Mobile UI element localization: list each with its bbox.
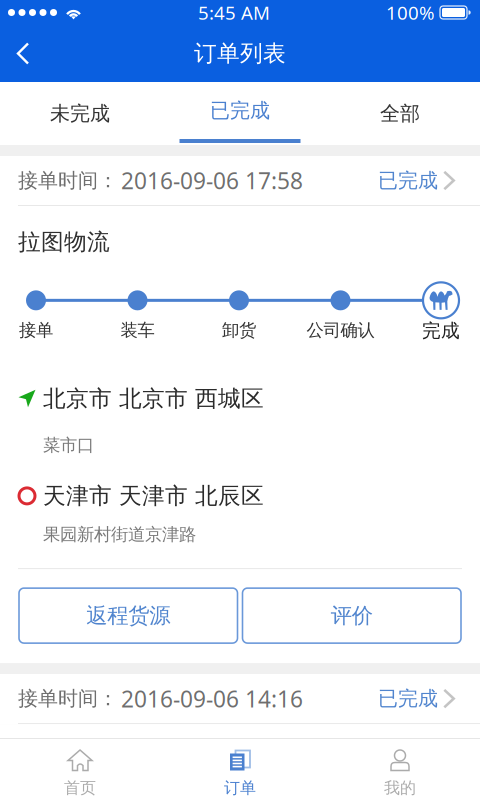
staticText: 全部 xyxy=(380,101,420,126)
staticText: 果园新村街道京津路 xyxy=(43,524,196,545)
staticText: 2016-09-06 17:58 xyxy=(121,165,303,195)
staticText: 天津市 天津市 北辰区 xyxy=(43,482,264,510)
staticText: 2016-09-06 14:16 xyxy=(121,684,303,714)
staticText: 装车 xyxy=(120,320,154,341)
staticText: 接单时间： xyxy=(18,168,118,193)
staticText: 北京市 北京市 西城区 xyxy=(43,385,264,413)
staticText: 完成 xyxy=(422,319,460,342)
staticText: 订单 xyxy=(224,778,256,798)
button[interactable]: 接单时间： xyxy=(0,156,480,205)
staticText: 菜市口 xyxy=(43,435,94,456)
staticText: 拉图物流 xyxy=(18,228,110,256)
staticText: 已完成 xyxy=(210,98,270,123)
staticText: 接单时间： xyxy=(18,686,118,711)
button[interactable]: 全部 xyxy=(320,82,480,145)
staticText: 公司确认 xyxy=(306,320,374,341)
button[interactable]: Back xyxy=(0,26,48,80)
staticText: 已完成 xyxy=(378,168,438,193)
button[interactable]: 评价 xyxy=(242,588,461,643)
button[interactable]: 未完成 xyxy=(0,82,160,145)
button[interactable]: 返程货源 xyxy=(19,588,237,643)
button[interactable]: 接单时间： xyxy=(0,674,480,723)
staticText: 卸货 xyxy=(222,320,256,341)
button[interactable]: 首页 xyxy=(0,739,160,800)
staticText: 返程货源 xyxy=(86,602,170,629)
staticText: 接单 xyxy=(19,320,53,341)
staticText: 我的 xyxy=(384,778,416,798)
staticText: 未完成 xyxy=(50,101,110,126)
staticText: 100% xyxy=(386,0,435,25)
staticText: 已完成 xyxy=(378,686,438,711)
button[interactable]: 已完成 xyxy=(160,82,320,145)
staticText: 订单列表 xyxy=(194,40,286,67)
staticText: 评价 xyxy=(331,602,373,629)
staticText: 首页 xyxy=(64,778,96,798)
button[interactable]: 我的 xyxy=(320,739,480,800)
button[interactable]: 订单 xyxy=(160,739,320,800)
staticText: 5:45 AM xyxy=(198,0,270,25)
